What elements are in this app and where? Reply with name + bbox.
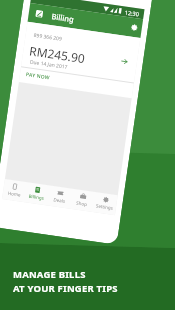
staticText: Shop: [76, 200, 87, 207]
staticText: Billings: [28, 193, 45, 201]
staticText: AT YOUR FINGER TIPS: [13, 282, 118, 295]
staticText: MANAGE BILLS: [13, 268, 86, 281]
staticText: Home: [7, 190, 21, 197]
staticText: 899 366 209: [33, 32, 63, 43]
staticText: Due 14 Jan 2017: [29, 58, 68, 71]
staticText: Deals: [53, 196, 66, 204]
staticText: Settings: [96, 202, 114, 211]
button[interactable]: App icon: [35, 10, 43, 18]
button[interactable]: Settings: [130, 24, 138, 31]
button[interactable]: Shop: [69, 189, 95, 212]
button[interactable]: Billings: [24, 182, 49, 205]
button[interactable]: Home: [2, 179, 27, 202]
button[interactable]: Settings: [92, 192, 118, 215]
staticText: RM245.90: [28, 42, 86, 66]
button[interactable]: Deals: [47, 185, 72, 209]
button[interactable]: 899 366 209: [19, 22, 140, 98]
staticText: 12:30: [124, 9, 140, 18]
staticText: Billing: [51, 11, 75, 24]
staticText: PAY NOW: [25, 71, 50, 81]
